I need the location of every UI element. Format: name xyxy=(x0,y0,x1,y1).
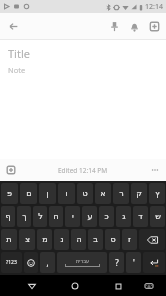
staticText: ' xyxy=(133,257,135,268)
button[interactable]: א xyxy=(95,183,111,204)
button[interactable]: Backspace xyxy=(139,229,165,250)
button[interactable]: Pin xyxy=(104,16,124,36)
staticText: ד xyxy=(138,212,143,221)
button[interactable]: ך xyxy=(17,206,31,227)
button[interactable]: Back xyxy=(0,13,26,39)
staticText: ח xyxy=(53,212,59,221)
button[interactable]: ח xyxy=(49,206,63,227)
staticText: Title xyxy=(8,46,30,61)
button[interactable]: Back xyxy=(22,276,42,296)
button[interactable]: Reminder xyxy=(124,16,144,36)
staticText: ? xyxy=(115,257,119,268)
button[interactable]: ל xyxy=(33,206,47,227)
button[interactable]: Add xyxy=(2,161,20,179)
button[interactable]: ק xyxy=(131,183,147,204)
button[interactable]: ' xyxy=(126,252,141,273)
staticText: ו xyxy=(65,189,68,198)
button[interactable]: ב xyxy=(88,229,103,250)
staticText: ש xyxy=(155,212,161,221)
button[interactable]: ן xyxy=(39,183,56,204)
staticText: ט xyxy=(82,189,88,198)
button[interactable]: ד xyxy=(133,206,148,227)
button[interactable]: ט xyxy=(77,183,93,204)
button[interactable]: ש xyxy=(150,206,165,227)
button[interactable]: Home xyxy=(65,276,85,296)
staticText: מ xyxy=(42,235,48,244)
staticText: י xyxy=(72,212,74,221)
button[interactable]: ף xyxy=(1,206,15,227)
staticText: 12:14 xyxy=(145,2,163,12)
staticText: ק xyxy=(136,189,142,198)
button[interactable]: ו xyxy=(58,183,75,204)
staticText: ר xyxy=(119,189,124,198)
button[interactable]: Enter xyxy=(143,252,165,273)
button[interactable]: ? xyxy=(109,252,124,273)
staticText: ע xyxy=(87,212,93,221)
staticText: ה xyxy=(76,235,82,244)
button[interactable]: Recent apps xyxy=(108,276,128,296)
staticText: ב xyxy=(93,235,98,244)
button[interactable]: Space xyxy=(57,252,107,273)
staticText: , xyxy=(46,257,49,268)
button[interactable]: פ xyxy=(1,183,18,204)
button[interactable]: Emoji xyxy=(24,252,38,273)
button[interactable]: י xyxy=(65,206,80,227)
staticText: ן xyxy=(46,189,49,198)
button[interactable]: ה xyxy=(71,229,86,250)
staticText: כ xyxy=(104,212,109,221)
button[interactable]: צ xyxy=(19,229,35,250)
button[interactable]: ?123 xyxy=(1,252,22,273)
button[interactable]: ת xyxy=(1,229,17,250)
staticText: צ xyxy=(25,235,30,244)
staticText: א xyxy=(100,189,106,198)
staticText: Edited 12:14 PM xyxy=(58,166,108,175)
button[interactable]: Archive xyxy=(144,16,164,36)
staticText: ף xyxy=(5,212,11,221)
button[interactable]: ע xyxy=(82,206,97,227)
button[interactable]: Hide keyboard xyxy=(139,276,159,296)
button[interactable]: ר xyxy=(113,183,129,204)
staticText: פ xyxy=(7,189,12,198)
button[interactable]: נ xyxy=(54,229,69,250)
button[interactable]: ס xyxy=(105,229,120,250)
staticText: Note xyxy=(8,65,26,75)
button[interactable]: ג xyxy=(116,206,131,227)
button[interactable]: מ xyxy=(37,229,52,250)
staticText: ס xyxy=(110,235,116,244)
staticText: ז xyxy=(128,235,131,244)
button[interactable]: ז xyxy=(122,229,137,250)
button[interactable]: , xyxy=(40,252,55,273)
staticText: ג xyxy=(122,212,126,221)
staticText: עברית xyxy=(76,258,90,264)
staticText: ץ xyxy=(155,189,160,198)
button[interactable]: ם xyxy=(20,183,37,204)
staticText: ם xyxy=(26,189,32,198)
staticText: ך xyxy=(22,212,27,221)
button[interactable]: ץ xyxy=(149,183,165,204)
button[interactable]: כ xyxy=(99,206,114,227)
button[interactable]: More options xyxy=(146,161,164,179)
staticText: נ xyxy=(60,235,64,244)
staticText: ?123 xyxy=(6,259,17,266)
staticText: ל xyxy=(38,212,43,221)
staticText: ת xyxy=(6,235,12,244)
